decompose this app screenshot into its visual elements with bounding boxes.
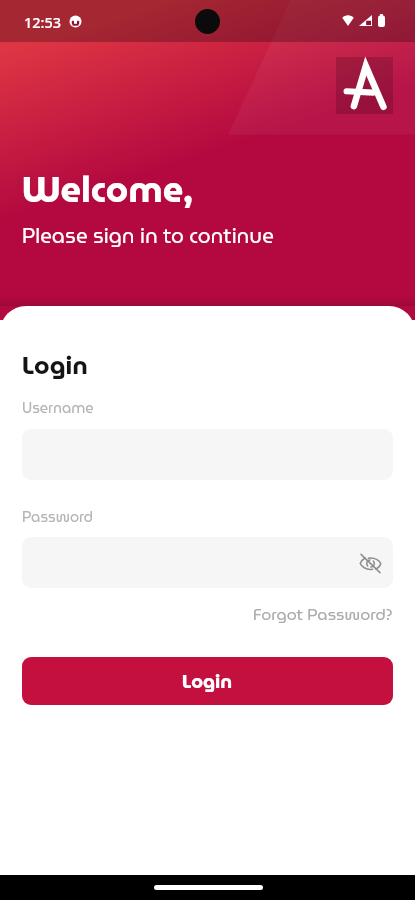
staticText: 12:53 [24, 12, 62, 32]
button[interactable]: Login [22, 657, 393, 705]
staticText: Username [22, 396, 94, 419]
staticText: Welcome, [22, 161, 193, 218]
button[interactable]: App logo [336, 57, 393, 114]
staticText: Login [182, 666, 233, 696]
button[interactable]: Password input [22, 537, 393, 588]
staticText: Password [22, 505, 94, 528]
button[interactable]: Toggle password visibility [356, 549, 384, 577]
button[interactable]: Forgot Password? [0, 602, 393, 627]
staticText: Forgot Password? [253, 602, 393, 627]
staticText: Login [22, 345, 88, 385]
staticText: Please sign in to continue [22, 220, 274, 253]
